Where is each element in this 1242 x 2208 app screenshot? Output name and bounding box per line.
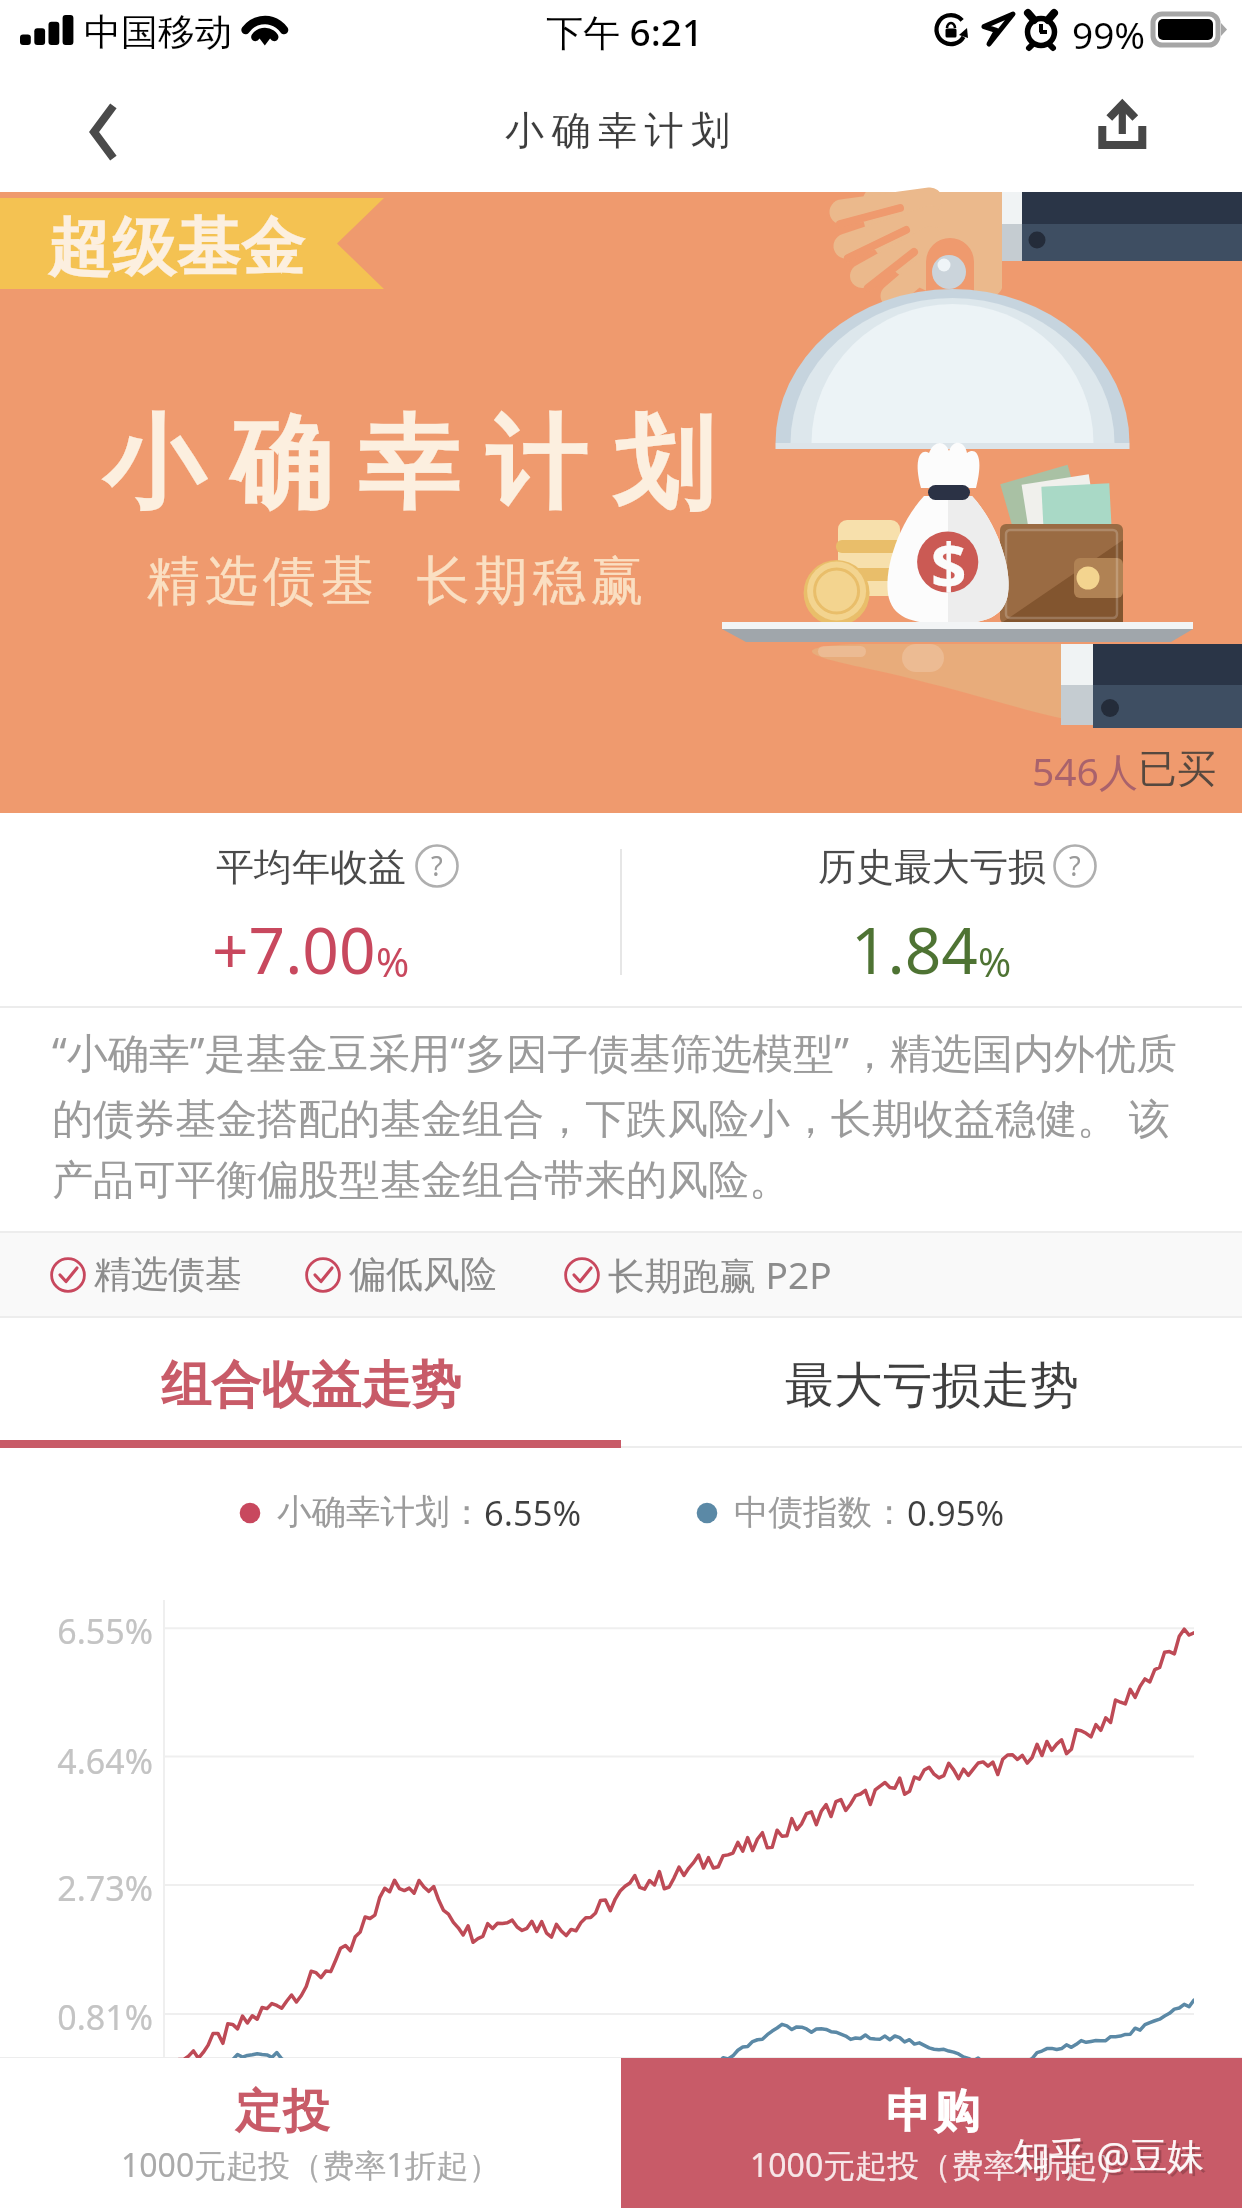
staticText: 99% <box>1072 9 1146 59</box>
button[interactable]: 定投 <box>0 2058 621 2208</box>
staticText: “小确幸”是基金豆采用“多因子债基筛选模型”，精选国内外优质的债券基金搭配的基金… <box>52 1024 1192 1206</box>
staticText: 申购 <box>885 2083 981 2141</box>
button[interactable]: Info <box>1053 844 1097 888</box>
button[interactable]: Info <box>415 844 459 888</box>
staticText: 精选债基 长期稳赢 <box>147 542 649 614</box>
staticText: 组合收益走势 <box>161 1354 461 1417</box>
staticText: 超级基金 <box>47 208 305 287</box>
button[interactable]: Share <box>1072 87 1172 187</box>
staticText: 1000元起投（费率1折起） <box>750 2143 1130 2187</box>
staticText: 中国移动 <box>84 9 232 56</box>
staticText: 6.55% <box>0 1608 153 1654</box>
staticText: +7.00 <box>212 906 376 993</box>
staticText: 历史最大亏损 <box>818 843 1046 891</box>
button[interactable]: 长期跑赢 P2P <box>564 1231 832 1318</box>
staticText: 平均年收益 <box>216 843 406 891</box>
staticText: 小确幸计划 <box>103 401 741 528</box>
staticText: $ <box>931 523 967 607</box>
staticText: 精选债基 <box>94 1251 242 1298</box>
staticText: 知乎 @豆妹 <box>1016 2132 1207 2183</box>
staticText: % <box>376 934 410 988</box>
button[interactable]: 偏低风险 <box>305 1231 497 1318</box>
staticText: ? <box>1069 847 1081 884</box>
staticText: 546人 <box>1032 744 1138 797</box>
staticText: 6.55% <box>484 1489 582 1536</box>
staticText: 定投 <box>234 2083 330 2141</box>
staticText: 中债指数： <box>734 1491 907 1534</box>
staticText: % <box>978 934 1012 988</box>
staticText: ? <box>431 847 443 884</box>
staticText: 4.64% <box>0 1738 153 1784</box>
button[interactable]: 最大亏损走势 <box>621 1318 1242 1448</box>
staticText: 0.95% <box>907 1489 1005 1536</box>
staticText: 偏低风险 <box>349 1251 497 1298</box>
staticText: 小确幸计划： <box>277 1491 484 1534</box>
button[interactable]: 精选债基 <box>50 1231 242 1318</box>
staticText: 最大亏损走势 <box>785 1355 1079 1417</box>
button[interactable]: 申购 <box>621 2058 1242 2208</box>
staticText: 1.84 <box>851 906 978 993</box>
staticText: 2.73% <box>0 1865 153 1911</box>
staticText: 知乎 @豆妹 <box>1013 2129 1204 2180</box>
staticText: 下午 6:21 <box>546 6 704 57</box>
staticText: 1000元起投（费率1折起） <box>121 2143 501 2187</box>
button[interactable]: Back <box>50 82 150 182</box>
staticText: 长期跑赢 P2P <box>608 1249 832 1300</box>
staticText: 0.81% <box>0 1994 153 2040</box>
button[interactable]: 组合收益走势 <box>0 1318 621 1448</box>
staticText: 已买 <box>1138 744 1216 793</box>
staticText: 小确幸计划 <box>505 106 738 155</box>
